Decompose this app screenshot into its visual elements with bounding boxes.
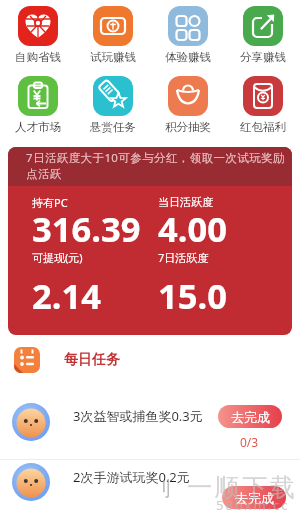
button[interactable]: 人才市场: [15, 76, 61, 134]
staticText: 可提现(元): [32, 250, 83, 265]
button[interactable]: 体验赚钱: [165, 6, 211, 64]
staticText: 自购省钱: [15, 50, 61, 64]
staticText: 试玩赚钱: [90, 50, 136, 64]
staticText: 3次益智或捕鱼奖0.3元: [73, 407, 203, 425]
staticText: 4.00: [158, 205, 227, 252]
staticText: 刂: [153, 476, 173, 501]
staticText: 316.39: [32, 205, 141, 252]
staticText: 每日任务: [64, 351, 120, 369]
button[interactable]: 2次手游试玩奖0.2元: [0, 460, 300, 516]
staticText: 7日活跃度大于10可参与分红，领取一次试玩奖励 点活跃: [26, 150, 285, 181]
button[interactable]: 分享赚钱: [240, 6, 286, 64]
button[interactable]: 去完成: [218, 405, 282, 428]
staticText: 2.14: [32, 272, 101, 319]
staticText: 体验赚钱: [165, 50, 211, 64]
button[interactable]: 悬赏任务: [90, 76, 136, 134]
staticText: 去完成: [231, 409, 270, 425]
staticText: 0/3: [240, 434, 259, 450]
staticText: 分享赚钱: [240, 50, 286, 64]
staticText: 红包福利: [240, 120, 286, 134]
staticText: 悬赏任务: [90, 120, 136, 134]
staticText: 15.0: [158, 272, 227, 319]
button[interactable]: 积分抽奖: [165, 76, 211, 134]
button[interactable]: 红包福利: [240, 76, 286, 134]
staticText: 持有PC: [32, 195, 68, 210]
staticText: 一顺下载: [186, 472, 296, 503]
button[interactable]: 试玩赚钱: [90, 6, 136, 64]
staticText: 积分抽奖: [165, 120, 211, 134]
button[interactable]: 3次益智或捕鱼奖0.3元: [0, 403, 300, 455]
staticText: 2次手游试玩奖0.2元: [73, 468, 190, 486]
button[interactable]: 去完成: [222, 486, 286, 509]
staticText: 当日活跃度: [158, 195, 213, 209]
staticText: 去完成: [235, 490, 274, 506]
staticText: 58bxm.cc: [216, 496, 290, 514]
staticText: 人才市场: [15, 120, 61, 134]
staticText: 7日活跃度: [158, 250, 209, 265]
button[interactable]: 自购省钱: [15, 6, 61, 64]
